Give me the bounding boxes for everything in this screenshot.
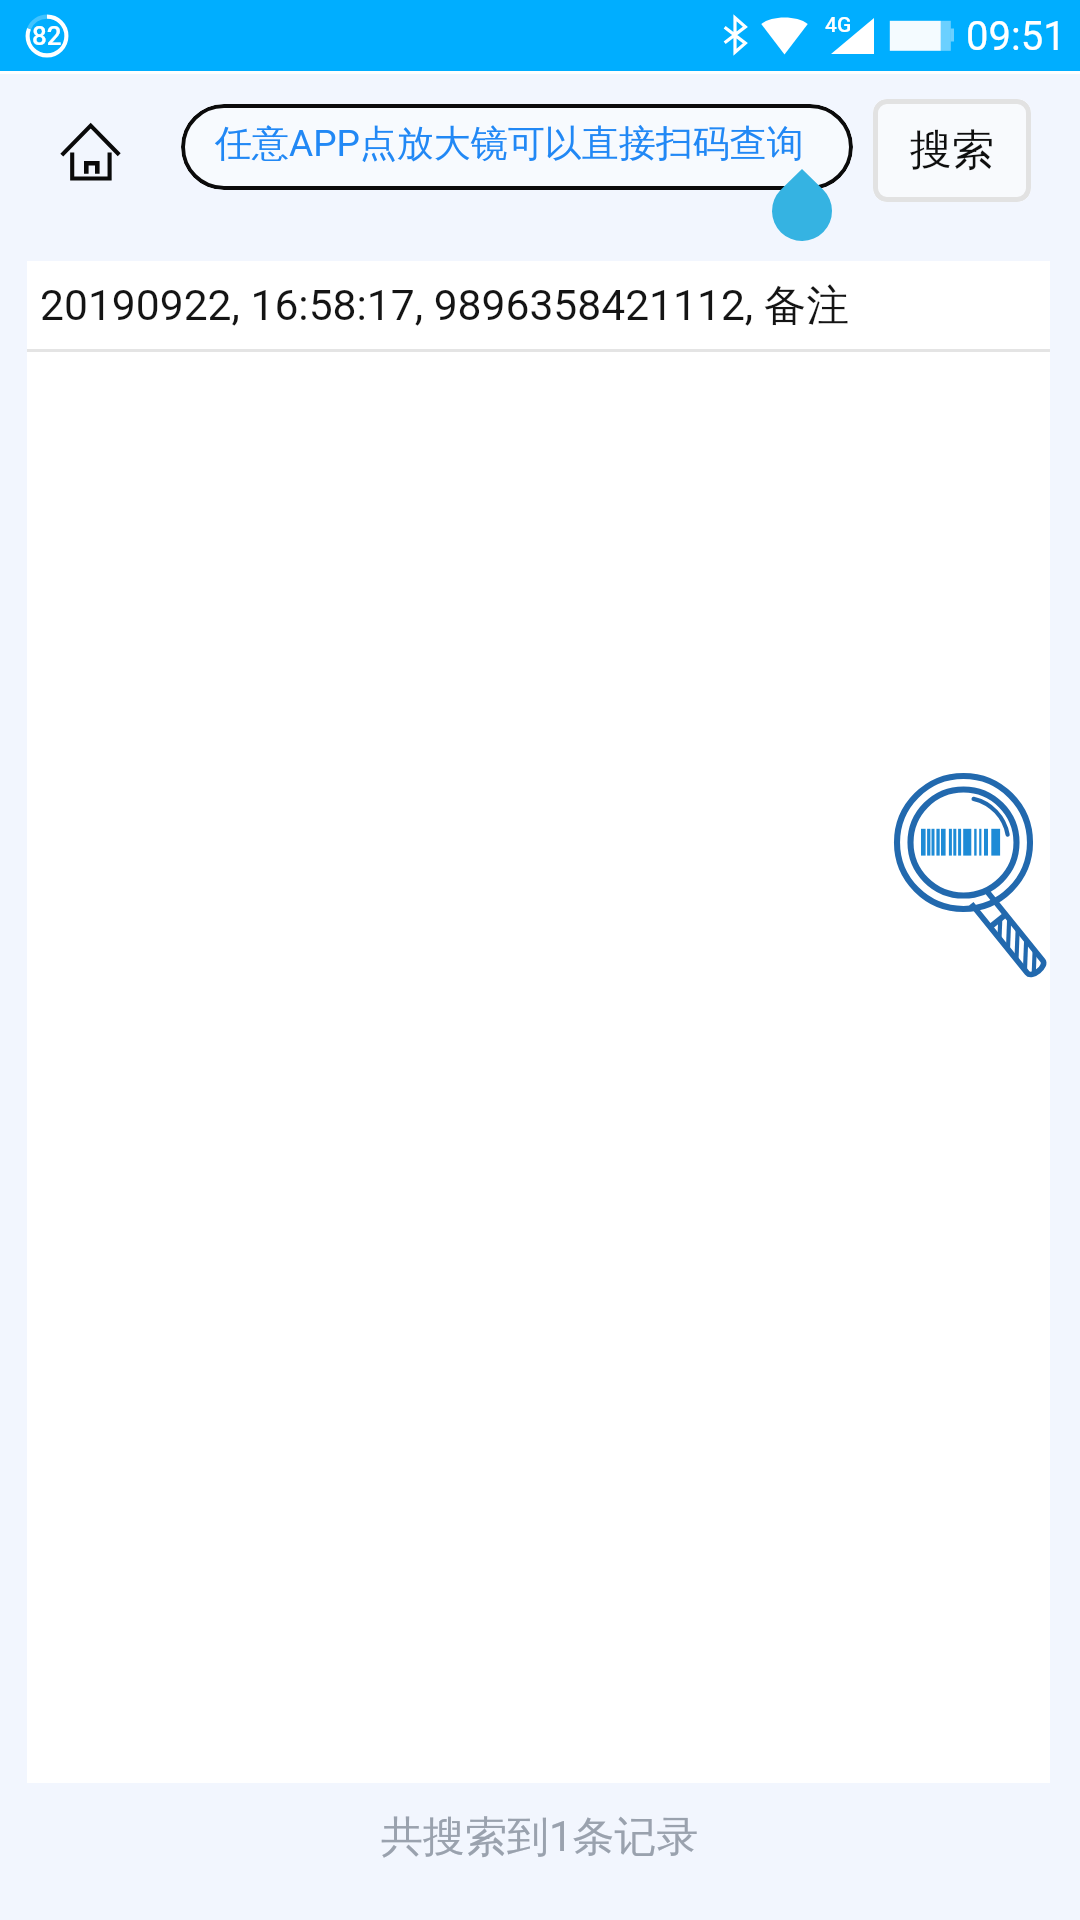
staticText: 搜索 <box>910 124 994 177</box>
staticText: 共搜索到1条记录 <box>381 1811 699 1864</box>
staticText: 09:51 <box>966 13 1066 60</box>
staticText: 任意APP点放大镜可以直接扫码查询 <box>215 120 804 167</box>
button[interactable]: Home <box>46 109 135 196</box>
button[interactable]: 搜索 <box>873 99 1031 202</box>
staticText: 4G <box>825 13 852 38</box>
staticText: 82 <box>32 21 62 51</box>
button[interactable]: 20190922, 16:58:17, 9896358421112, 备注 <box>27 261 1050 350</box>
staticText: 20190922, 16:58:17, 9896358421112, 备注 <box>40 279 849 333</box>
button[interactable]: 任意APP点放大镜可以直接扫码查询 <box>181 104 853 190</box>
